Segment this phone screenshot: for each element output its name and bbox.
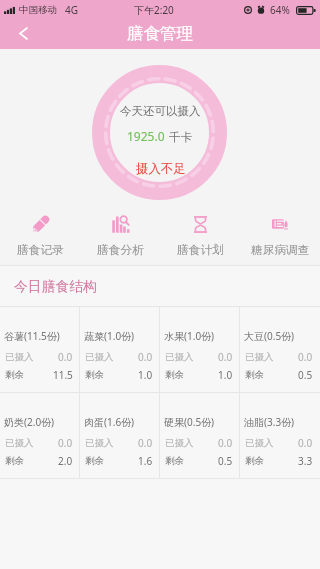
- staticText: 已摄入: [5, 437, 34, 449]
- button[interactable]: 奶类(2.0份): [0, 393, 80, 478]
- staticText: 糖尿病调查: [251, 243, 310, 258]
- staticText: 已摄入: [5, 351, 34, 363]
- staticText: 剩余: [165, 369, 184, 381]
- button[interactable]: 大豆(0.5份): [240, 307, 320, 392]
- staticText: 剩余: [245, 369, 264, 381]
- other: 膳食记录: [32, 216, 49, 233]
- button[interactable]: 返回: [0, 20, 46, 49]
- other: 膳食计划: [194, 216, 207, 233]
- staticText: 1.0: [218, 368, 233, 382]
- staticText: 摄入不足: [136, 161, 186, 177]
- staticText: 0.0: [218, 436, 233, 450]
- staticText: 千卡: [169, 130, 192, 144]
- staticText: 11.5: [53, 368, 73, 382]
- button[interactable]: 油脂(3.3份): [240, 393, 320, 478]
- staticText: 0.0: [58, 350, 73, 364]
- staticText: 油脂(3.3份): [244, 415, 295, 429]
- staticText: 蔬菜(1.0份): [84, 329, 135, 343]
- staticText: 已摄入: [165, 351, 194, 363]
- staticText: 今日膳食结构: [14, 278, 97, 295]
- staticText: 肉蛋(1.6份): [84, 415, 135, 429]
- staticText: 大豆(0.5份): [244, 329, 295, 343]
- staticText: 剩余: [85, 369, 104, 381]
- staticText: 谷薯(11.5份): [4, 329, 60, 343]
- button[interactable]: 膳食记录: [0, 200, 80, 265]
- staticText: 剩余: [245, 455, 264, 467]
- staticText: 1925.0: [127, 128, 165, 144]
- button[interactable]: 肉蛋(1.6份): [80, 393, 160, 478]
- staticText: 中国移动: [19, 4, 57, 16]
- button[interactable]: 水果(1.0份): [160, 307, 240, 392]
- button[interactable]: 糖尿病调查: [240, 200, 320, 265]
- staticText: 膳食计划: [177, 243, 224, 258]
- staticText: 膳食记录: [17, 243, 64, 258]
- staticText: 0.0: [298, 436, 313, 450]
- staticText: 水果(1.0份): [164, 329, 215, 343]
- staticText: 0.5: [298, 368, 313, 382]
- staticText: 0.0: [218, 350, 233, 364]
- button[interactable]: 膳食计划: [160, 200, 240, 265]
- staticText: 膳食管理: [127, 23, 193, 44]
- button[interactable]: 膳食分析: [80, 200, 160, 265]
- staticText: 剩余: [5, 369, 24, 381]
- staticText: 剩余: [5, 455, 24, 467]
- staticText: 4G: [65, 3, 78, 17]
- button[interactable]: 硬果(0.5份): [160, 393, 240, 478]
- staticText: 剩余: [165, 455, 184, 467]
- staticText: 今天还可以摄入: [120, 104, 201, 118]
- staticText: 1.0: [138, 368, 153, 382]
- staticText: 剩余: [85, 455, 104, 467]
- staticText: 硬果(0.5份): [164, 415, 215, 429]
- button[interactable]: 谷薯(11.5份): [0, 307, 80, 392]
- staticText: 0.0: [138, 436, 153, 450]
- staticText: 1.6: [138, 454, 153, 468]
- button[interactable]: 蔬菜(1.0份): [80, 307, 160, 392]
- staticText: 已摄入: [85, 437, 114, 449]
- staticText: 已摄入: [165, 437, 194, 449]
- staticText: 3.3: [298, 454, 313, 468]
- other: 糖尿病调查: [272, 219, 288, 229]
- other: 膳食分析: [112, 216, 129, 233]
- staticText: 已摄入: [245, 351, 274, 363]
- staticText: 2.0: [58, 454, 73, 468]
- staticText: 0.0: [298, 350, 313, 364]
- staticText: 64%: [270, 3, 290, 17]
- staticText: 0.5: [218, 454, 233, 468]
- staticText: 0.0: [58, 436, 73, 450]
- staticText: 0.0: [138, 350, 153, 364]
- staticText: 膳食分析: [97, 243, 144, 258]
- staticText: 下午2:20: [134, 3, 174, 17]
- staticText: 已摄入: [85, 351, 114, 363]
- staticText: 奶类(2.0份): [4, 415, 55, 429]
- staticText: 已摄入: [245, 437, 274, 449]
